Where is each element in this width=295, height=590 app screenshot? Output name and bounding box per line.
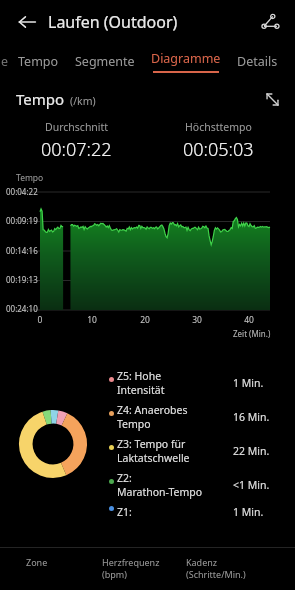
staticText: 00:04:22 xyxy=(6,186,38,197)
staticText: Details xyxy=(237,53,278,70)
staticText: Durchschnitt xyxy=(45,120,109,134)
staticText: Diagramme xyxy=(151,50,221,67)
button[interactable]: Z1: xyxy=(105,505,287,519)
staticText: 00:07:22 xyxy=(41,137,112,162)
staticText: 00:09:19 xyxy=(6,215,38,226)
staticText: (Schritte/Min.) xyxy=(186,568,246,580)
staticText: e xyxy=(1,53,9,70)
staticText: Intensität xyxy=(117,383,165,397)
staticText: 16 Min. xyxy=(233,410,270,424)
button[interactable]: Z2: xyxy=(105,471,287,499)
staticText: Z4: Anaerobes xyxy=(117,403,188,417)
button[interactable]: Share xyxy=(253,5,287,39)
button[interactable]: Vollbild xyxy=(259,86,285,112)
staticText: Tempo xyxy=(18,53,59,70)
button[interactable]: Diagramme xyxy=(151,44,221,78)
staticText: 40 xyxy=(239,314,259,326)
staticText: 20 xyxy=(135,314,155,326)
staticText: Herzfrequenz xyxy=(102,556,160,568)
staticText: Laktatschwelle xyxy=(117,451,190,465)
button[interactable]: Segmente xyxy=(75,44,135,78)
staticText: Zeit (Min.) xyxy=(233,328,271,339)
button[interactable]: e xyxy=(0,44,10,78)
staticText: Höchsttempo xyxy=(185,120,252,134)
staticText: Z1: xyxy=(117,505,132,519)
staticText: 30 xyxy=(187,314,207,326)
staticText: 1 Min. xyxy=(233,505,264,519)
staticText: Kadenz xyxy=(186,556,218,568)
button[interactable]: Z3: Tempo für xyxy=(105,437,287,465)
staticText: 00:19:13 xyxy=(6,274,38,285)
button[interactable]: Z5: Hohe xyxy=(105,369,287,397)
button[interactable]: Z4: Anaerobes xyxy=(105,403,287,431)
button[interactable]: Tempo xyxy=(18,44,59,78)
button[interactable]: Back xyxy=(10,5,44,39)
staticText: Tempo xyxy=(117,417,151,431)
staticText: 10 xyxy=(82,314,102,326)
staticText: 00:05:03 xyxy=(183,137,254,162)
staticText: Zone xyxy=(26,556,48,568)
staticText: Z3: Tempo für xyxy=(117,437,186,451)
staticText: Marathon-Tempo xyxy=(117,485,203,499)
staticText: (/km) xyxy=(70,94,96,108)
staticText: 00:14:16 xyxy=(6,245,38,256)
staticText: Tempo xyxy=(16,89,65,109)
staticText: (bpm) xyxy=(102,568,127,580)
staticText: <1 Min. xyxy=(233,478,270,492)
staticText: Segmente xyxy=(75,53,135,70)
staticText: 0 xyxy=(30,314,50,326)
staticText: 00:24:10 xyxy=(6,303,38,314)
staticText: Tempo xyxy=(16,172,44,184)
staticText: 1 Min. xyxy=(233,376,264,390)
button[interactable]: Details xyxy=(237,44,278,78)
staticText: Z2: xyxy=(117,471,132,485)
staticText: Z5: Hohe xyxy=(117,369,162,383)
staticText: 22 Min. xyxy=(233,444,270,458)
staticText: Laufen (Outdoor) xyxy=(48,11,178,33)
